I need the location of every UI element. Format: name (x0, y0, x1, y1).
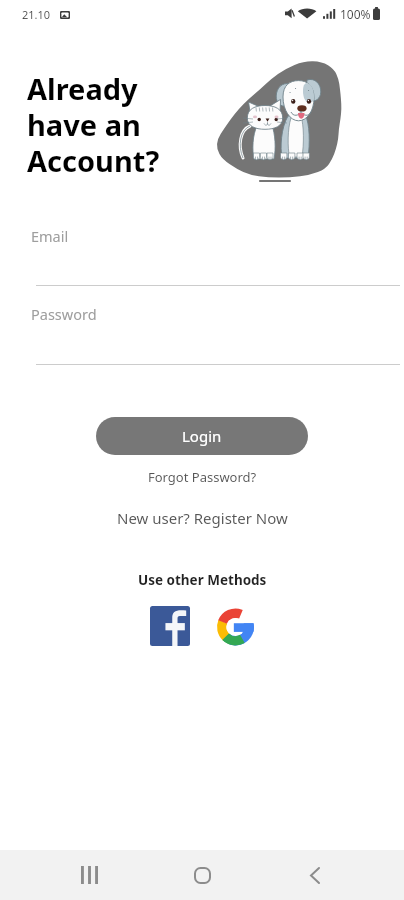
staticText: Forgot Password? (148, 468, 257, 486)
button[interactable]: Recent apps (59, 856, 119, 894)
staticText: Password (31, 304, 97, 324)
button[interactable]: Forgot Password? (148, 468, 257, 486)
button[interactable]: Back (285, 856, 345, 894)
staticText: 100% (340, 6, 371, 22)
button[interactable]: Sign in with Facebook (150, 606, 190, 646)
staticText: Use other Methods (138, 571, 267, 589)
button[interactable]: New user? Register Now (117, 508, 288, 528)
staticText: Email (31, 226, 69, 246)
staticText: 21.10 (22, 7, 51, 22)
button[interactable]: Home (172, 856, 232, 894)
button[interactable]: Login (96, 417, 308, 455)
staticText: New user? Register Now (117, 508, 288, 528)
staticText: Already have an Account? (27, 69, 160, 181)
button[interactable]: Sign in with Google (217, 608, 254, 646)
button[interactable]: Password (20, 296, 400, 365)
staticText: Login (182, 426, 222, 446)
button[interactable]: Email (20, 218, 400, 286)
